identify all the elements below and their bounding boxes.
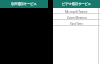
staticText: Microsoft Teams (65, 10, 88, 14)
staticText: Zoom Meeting (67, 16, 87, 20)
button[interactable]: ビデオ通話サービス (53, 0, 100, 8)
button[interactable]: 音声通話サービス (0, 0, 48, 8)
staticText: FaceTime (70, 22, 83, 26)
button[interactable]: Zoom Meeting (53, 14, 100, 20)
button[interactable]: FaceTime (53, 20, 100, 26)
staticText: ビデオ通話サービス (62, 2, 92, 6)
staticText: 音声通話サービス (11, 2, 37, 6)
button[interactable]: Microsoft Teams (53, 8, 100, 14)
